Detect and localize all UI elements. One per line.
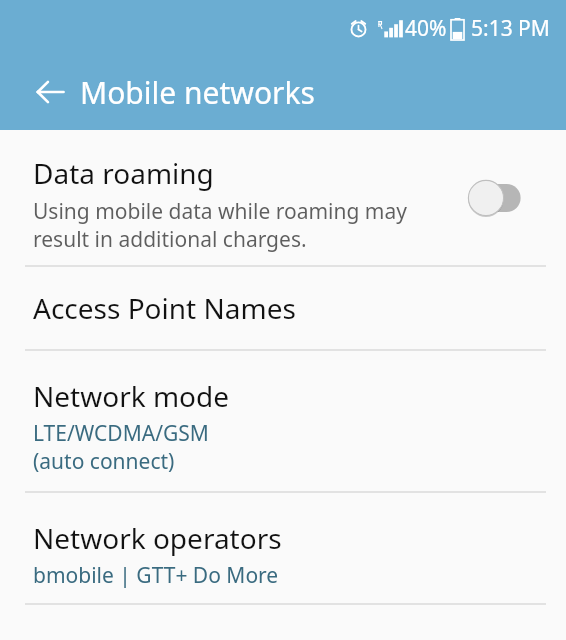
- staticText: Network mode: [33, 377, 230, 415]
- staticText: Using mobile data while roaming may resu…: [33, 197, 407, 253]
- staticText: 40%: [405, 14, 447, 43]
- button[interactable]: Network operators: [0, 493, 566, 603]
- button[interactable]: Back: [22, 64, 78, 120]
- staticText: Network operators: [33, 519, 282, 557]
- button[interactable]: Network mode: [0, 351, 566, 491]
- staticText: LTE/WCDMA/GSM (auto connect): [33, 419, 209, 475]
- button[interactable]: Data roaming toggle, off: [466, 176, 544, 220]
- staticText: Mobile networks: [80, 72, 315, 113]
- button[interactable]: Data roaming: [0, 130, 566, 265]
- staticText: bmobile | GTT+ Do More: [33, 561, 279, 590]
- staticText: Data roaming: [33, 154, 214, 192]
- staticText: 5:13 PM: [471, 14, 550, 43]
- button[interactable]: Access Point Names: [0, 267, 566, 349]
- staticText: Access Point Names: [33, 289, 296, 327]
